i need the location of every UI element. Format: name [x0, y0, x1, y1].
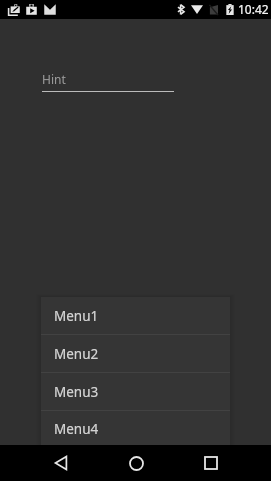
- button[interactable]: Menu2: [41, 335, 230, 372]
- button[interactable]: Menu4: [41, 411, 230, 447]
- staticText: 10:42: [238, 1, 269, 17]
- button[interactable]: Recents: [190, 445, 232, 481]
- staticText: Menu2: [54, 345, 99, 363]
- staticText: Menu1: [54, 307, 99, 325]
- staticText: Menu4: [54, 420, 99, 438]
- button[interactable]: Home: [115, 445, 157, 481]
- button[interactable]: Back: [40, 445, 82, 481]
- staticText: Menu3: [54, 383, 99, 401]
- staticText: Hint: [42, 71, 66, 87]
- button[interactable]: Menu3: [41, 373, 230, 410]
- button[interactable]: Menu1: [41, 297, 230, 334]
